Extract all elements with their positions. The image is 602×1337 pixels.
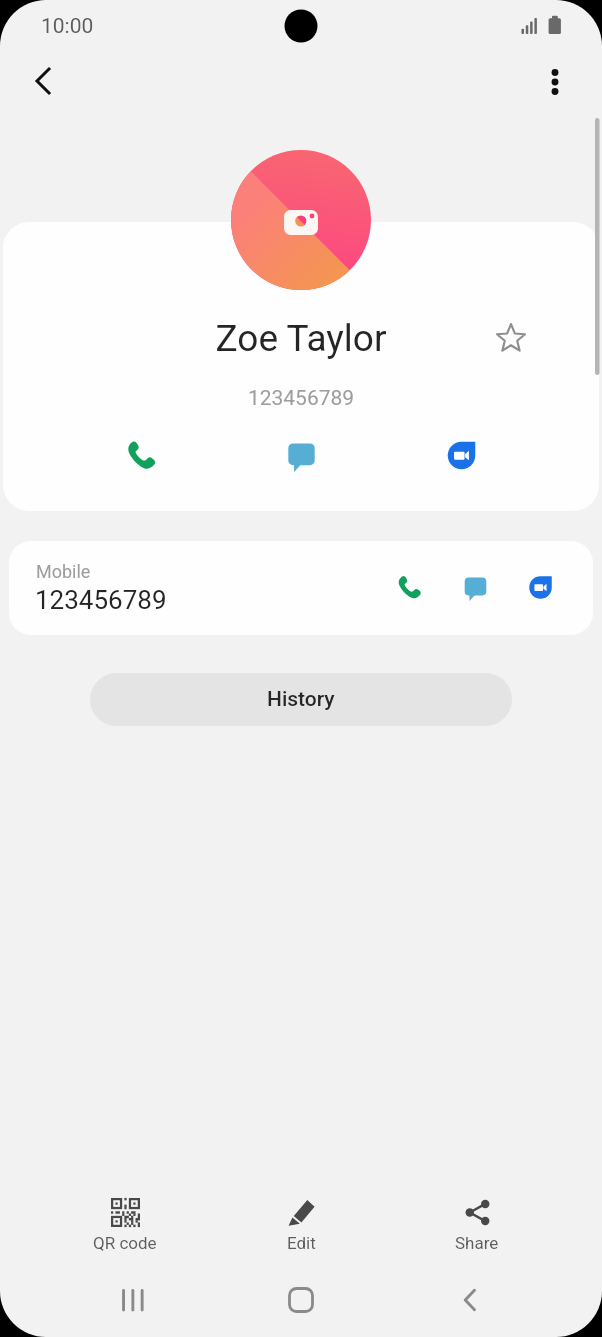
staticText: Mobile xyxy=(36,561,91,582)
button[interactable]: Back xyxy=(420,1275,520,1325)
staticText: 123456789 xyxy=(35,585,167,615)
staticText: Edit xyxy=(287,1233,316,1253)
button[interactable]: Message xyxy=(273,427,329,483)
button[interactable]: Add to favourites xyxy=(487,314,535,362)
button[interactable]: Back xyxy=(14,52,72,110)
button[interactable]: QR code xyxy=(55,1185,195,1257)
button[interactable]: Recents xyxy=(81,1275,181,1325)
button[interactable]: Message mobile xyxy=(453,565,497,609)
button[interactable]: Edit xyxy=(231,1185,371,1257)
button[interactable]: Video call xyxy=(433,427,489,483)
button[interactable]: History xyxy=(90,673,512,726)
staticText: History xyxy=(267,687,335,712)
staticText: Share xyxy=(455,1233,499,1253)
button[interactable]: Mobile xyxy=(9,541,593,635)
staticText: 10:00 xyxy=(41,14,94,39)
button[interactable]: Share xyxy=(407,1185,547,1257)
button[interactable]: More options xyxy=(526,53,584,111)
button[interactable]: Call xyxy=(113,427,169,483)
button[interactable]: Video call mobile xyxy=(518,565,562,609)
button[interactable]: Home xyxy=(251,1275,351,1325)
staticText: 123456789 xyxy=(0,386,602,411)
staticText: QR code xyxy=(93,1233,157,1253)
button[interactable]: Contact photo xyxy=(231,150,371,290)
button[interactable]: Call mobile xyxy=(387,565,431,609)
staticText: Zoe Taylor xyxy=(0,317,602,360)
